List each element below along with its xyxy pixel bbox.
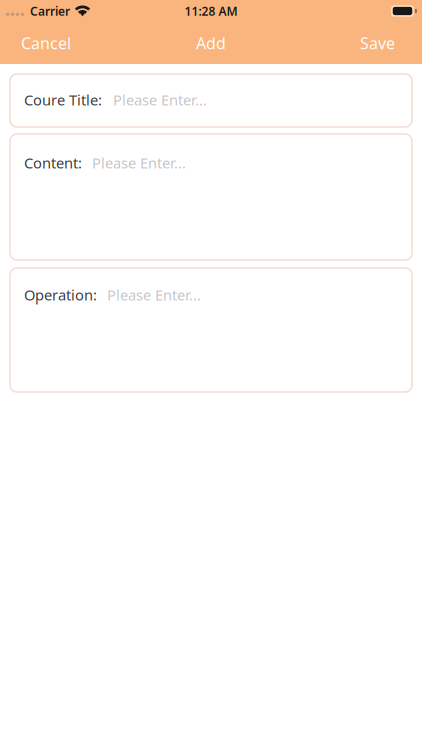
- button[interactable]: Cancel: [0, 22, 85, 64]
- button[interactable]: Operation:: [10, 268, 412, 392]
- staticText: Coure Title:: [24, 90, 102, 109]
- staticText: Content:: [24, 153, 82, 172]
- button[interactable]: Coure Title:: [10, 74, 412, 127]
- staticText: 11:28 AM: [184, 3, 237, 19]
- button[interactable]: Content:: [10, 134, 412, 260]
- staticText: Please Enter...: [107, 285, 201, 304]
- staticText: Cancel: [21, 32, 71, 54]
- staticText: Carrier: [30, 3, 70, 19]
- button[interactable]: Save: [346, 22, 422, 64]
- staticText: Operation:: [24, 285, 97, 304]
- staticText: Add: [196, 32, 226, 54]
- staticText: Please Enter...: [113, 90, 207, 109]
- staticText: Save: [360, 32, 395, 54]
- staticText: Please Enter...: [92, 153, 186, 172]
